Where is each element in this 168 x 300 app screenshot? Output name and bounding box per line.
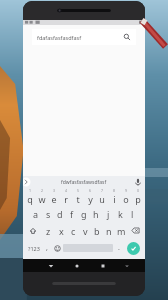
staticText: y <box>88 193 93 205</box>
button[interactable]: 6 <box>84 188 96 205</box>
button[interactable]: g <box>78 205 90 222</box>
button[interactable]: fdwfasfasfawsdfasf <box>23 176 145 188</box>
button[interactable]: Recents <box>90 259 116 272</box>
button[interactable]: 9 <box>120 188 132 205</box>
staticText: 2 <box>41 188 44 193</box>
button[interactable]: m <box>115 222 127 239</box>
button[interactable]: . <box>113 239 124 257</box>
staticText: 6 <box>89 188 92 193</box>
staticText: 3 <box>53 188 56 193</box>
button[interactable]: b <box>91 222 103 239</box>
button[interactable]: d <box>54 205 66 222</box>
staticText: 4 <box>65 188 68 193</box>
staticText: q <box>27 193 33 205</box>
staticText: fdwfasfasfawsdfasf <box>61 179 107 186</box>
button[interactable]: Backspace <box>127 222 144 239</box>
staticText: d <box>57 208 63 220</box>
staticText: 1 <box>29 188 32 193</box>
staticText: p <box>135 193 141 205</box>
staticText: i <box>113 193 116 205</box>
staticText: e <box>51 193 57 205</box>
button[interactable]: Hide keyboard <box>116 259 137 272</box>
staticText: o <box>123 193 129 205</box>
staticText: , <box>46 243 48 253</box>
button[interactable]: z <box>42 222 55 239</box>
staticText: n <box>106 225 112 237</box>
staticText: 8 <box>113 188 116 193</box>
staticText: x <box>59 225 64 237</box>
staticText: t <box>76 193 80 205</box>
staticText: b <box>94 225 100 237</box>
staticText: l <box>131 208 134 220</box>
staticText: ?123 <box>28 245 40 252</box>
button[interactable]: fdafasfasfasdfasf <box>32 29 136 45</box>
staticText: v <box>83 225 88 237</box>
button[interactable]: c <box>67 222 79 239</box>
staticText: s <box>46 208 51 220</box>
button[interactable]: f <box>66 205 78 222</box>
button[interactable]: h <box>90 205 102 222</box>
staticText: j <box>107 208 110 220</box>
staticText: g <box>81 208 87 220</box>
staticText: c <box>71 225 76 237</box>
button[interactable]: , <box>42 239 51 257</box>
button[interactable]: n <box>103 222 115 239</box>
staticText: 0 <box>137 188 140 193</box>
staticText: fdafasfasfasdfasf <box>37 34 123 41</box>
other: Search <box>123 33 131 41</box>
button[interactable]: Home <box>64 259 90 272</box>
staticText: w <box>38 193 46 205</box>
button[interactable]: j <box>102 205 114 222</box>
staticText: 7 <box>101 188 104 193</box>
button[interactable]: Enter <box>127 242 140 255</box>
button[interactable]: 7 <box>96 188 108 205</box>
button[interactable]: 4 <box>60 188 72 205</box>
button[interactable]: k <box>114 205 126 222</box>
button[interactable]: Shift <box>24 222 42 239</box>
staticText: . <box>118 243 120 253</box>
staticText: h <box>93 208 99 220</box>
button[interactable]: ?123 <box>25 239 42 257</box>
button[interactable]: s <box>42 205 54 222</box>
staticText: 9 <box>125 188 128 193</box>
staticText: u <box>99 193 105 205</box>
button[interactable]: a <box>30 205 42 222</box>
button[interactable]: 1 <box>24 188 36 205</box>
button[interactable]: Emoji <box>51 239 63 257</box>
button[interactable]: 0 <box>132 188 144 205</box>
button[interactable]: 5 <box>72 188 84 205</box>
button[interactable]: 3 <box>48 188 60 205</box>
staticText: r <box>64 193 68 205</box>
staticText: f <box>70 208 74 220</box>
staticText: 5 <box>77 188 80 193</box>
staticText: k <box>118 208 123 220</box>
button[interactable]: Back <box>38 259 64 272</box>
button[interactable]: 2 <box>36 188 48 205</box>
staticText: z <box>46 225 51 237</box>
staticText: a <box>33 208 39 220</box>
button[interactable]: 8 <box>108 188 120 205</box>
button[interactable]: l <box>126 205 138 222</box>
staticText: m <box>117 225 126 237</box>
button[interactable]: v <box>79 222 91 239</box>
button[interactable]: x <box>55 222 67 239</box>
